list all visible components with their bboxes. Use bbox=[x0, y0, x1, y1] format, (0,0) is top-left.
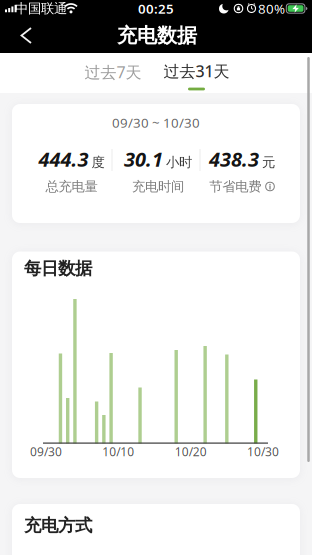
staticText: 10/20 bbox=[175, 443, 207, 459]
staticText: 10/30 bbox=[247, 443, 279, 459]
staticText: 度 bbox=[91, 154, 104, 170]
staticText: 过去7天 bbox=[84, 61, 141, 83]
staticText: 过去31天 bbox=[163, 60, 229, 82]
staticText: 小时 bbox=[166, 154, 192, 170]
staticText: 充电方式 bbox=[24, 515, 92, 536]
staticText: 80% bbox=[258, 0, 285, 17]
staticText: 09/30 ~ 10/30 bbox=[112, 114, 200, 131]
staticText: 总充电量 bbox=[45, 178, 97, 195]
staticText: 444.3 bbox=[38, 146, 88, 172]
staticText: 438.3 bbox=[209, 146, 259, 172]
staticText: 充电数据 bbox=[117, 23, 197, 48]
staticText: 30.1 bbox=[124, 146, 163, 172]
button[interactable]: Back bbox=[7, 20, 43, 50]
staticText: 10/10 bbox=[102, 443, 134, 459]
staticText: 元 bbox=[262, 154, 275, 170]
staticText: 充电时间 bbox=[132, 178, 184, 195]
button[interactable]: 过去7天 bbox=[73, 52, 153, 92]
staticText: 节省电费 bbox=[209, 178, 261, 195]
staticText: 00:25 bbox=[138, 0, 174, 17]
staticText: 09/30 bbox=[30, 443, 62, 459]
staticText: 中国联通 bbox=[15, 0, 67, 17]
button[interactable]: 节省电费说明 bbox=[265, 182, 275, 191]
button[interactable]: 过去31天 bbox=[151, 52, 241, 92]
staticText: 每日数据 bbox=[24, 258, 92, 279]
